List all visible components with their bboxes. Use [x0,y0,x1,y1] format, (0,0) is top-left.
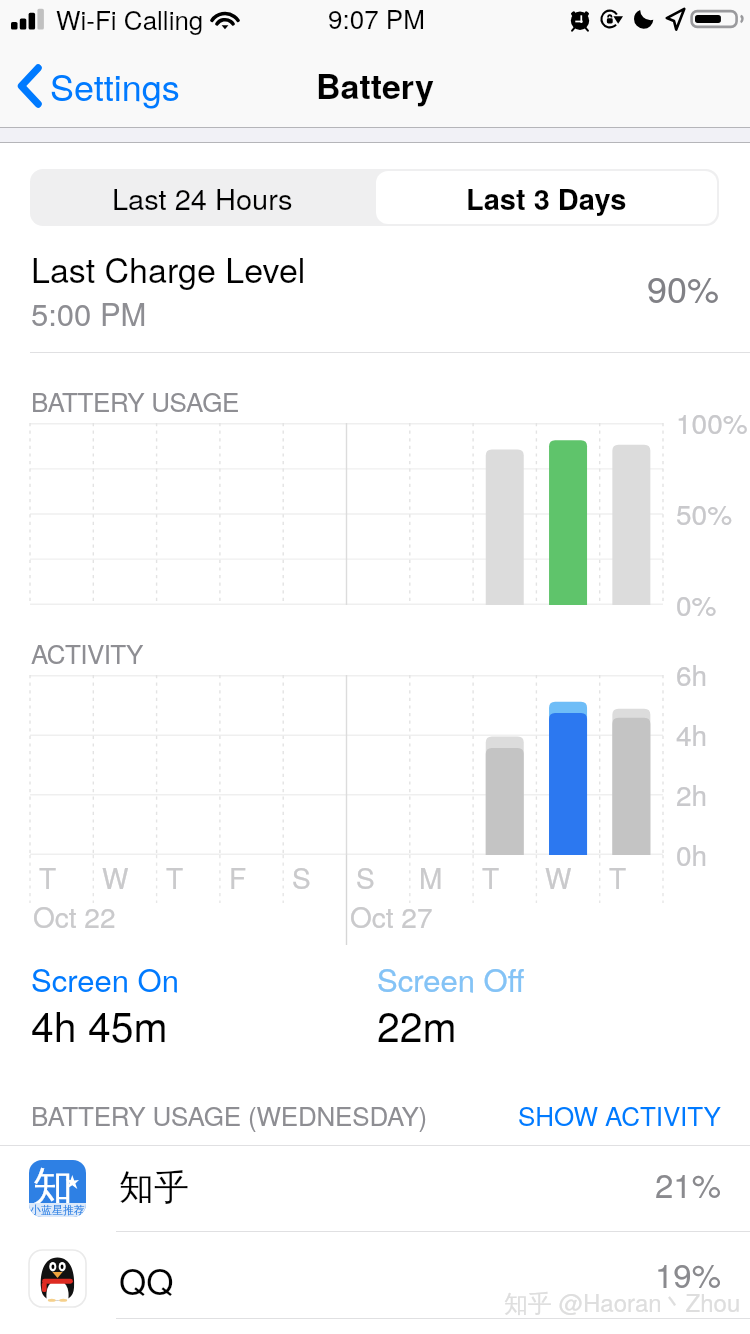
staticText: QQ [119,1255,174,1305]
staticText: 100% [676,402,748,442]
staticText: BATTERY USAGE [31,382,240,419]
staticText: 21% [655,1160,722,1207]
staticText: S [292,857,311,897]
staticText: 0h [676,834,708,874]
other: Back to Settings [18,65,42,107]
staticText: 22m [377,995,457,1054]
staticText: 0% [676,584,717,624]
staticText: 9:07 PM [328,0,425,36]
staticText: BATTERY USAGE (WEDNESDAY) [31,1096,428,1133]
staticText: 6h [676,654,708,694]
staticText: Last 3 Days [466,177,627,219]
staticText: T [609,857,627,897]
staticText: Battery [316,61,434,110]
staticText: Oct 22 [33,896,116,936]
staticText: W [545,857,572,897]
staticText: 知乎 [119,1165,189,1209]
button[interactable]: Screen On [0,0,148,44]
staticText: T [39,857,57,897]
staticText: Last 24 Hours [112,177,293,219]
staticText: 知 [33,1161,73,1211]
button[interactable]: SHOW ACTIVITY [547,0,750,37]
staticText: S [356,857,375,897]
staticText: Settings [50,60,180,112]
staticText: 4h 45m [31,995,168,1054]
button[interactable]: 知 [0,1146,750,1231]
staticText: 50% [676,493,733,533]
staticText: Wi-Fi Calling [56,0,204,37]
staticText: 4h [676,714,708,754]
staticText: 19% [655,1250,722,1297]
staticText: 小蓝星推荐 [30,1203,85,1217]
staticText: 2h [676,774,708,814]
button[interactable]: Back to Settings [12,50,186,122]
staticText: W [102,857,129,897]
button[interactable]: Screen Off [0,0,148,44]
staticText: T [482,857,500,897]
button[interactable]: Last 24 Hours [30,169,374,226]
staticText: T [166,857,184,897]
staticText: F [229,857,247,897]
staticText: Last Charge Level [31,244,306,293]
staticText: 5:00 PM [31,290,147,334]
button[interactable]: Last 3 Days [376,171,717,224]
staticText: Oct 27 [350,896,433,936]
staticText: M [419,857,443,897]
staticText: 90% [647,262,720,314]
staticText: 知乎 @Haoran丶Zhou [504,1284,741,1319]
staticText: ACTIVITY [31,634,143,671]
button[interactable]: QQ [0,1236,750,1321]
